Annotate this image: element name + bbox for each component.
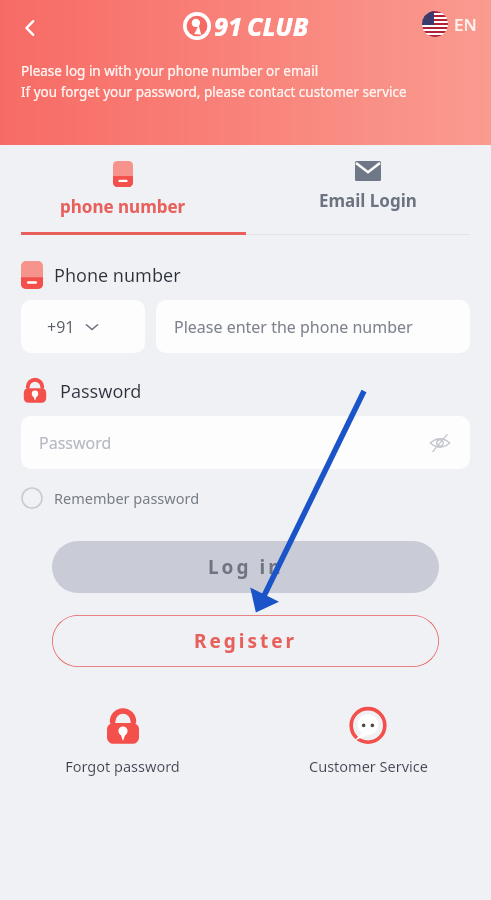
staticText: 91 (214, 9, 243, 43)
button[interactable]: Customer Service (245, 707, 491, 776)
staticText: Forgot password (65, 756, 180, 776)
staticText: Please enter the phone number (174, 316, 413, 338)
button[interactable]: Password (21, 416, 470, 469)
staticText: phone number (60, 195, 186, 218)
staticText: Customer Service (309, 756, 428, 776)
button[interactable]: Please enter the phone number (156, 300, 470, 353)
staticText: +91 (47, 316, 75, 338)
staticText: Email Login (319, 189, 417, 212)
staticText: Password (39, 432, 112, 454)
button[interactable]: Forgot password (0, 707, 245, 776)
staticText: Remember password (54, 488, 200, 508)
button[interactable]: Show password (424, 427, 456, 459)
staticText: If you forget your password, please cont… (21, 83, 407, 101)
staticText: Phone number (54, 263, 181, 288)
staticText: CLUB (247, 9, 309, 43)
button[interactable]: Register (52, 615, 439, 667)
button[interactable]: Log in (52, 541, 439, 593)
button[interactable]: EN (422, 11, 477, 37)
staticText: EN (454, 13, 477, 36)
button[interactable]: +91 (21, 300, 145, 353)
button[interactable]: phone number (0, 153, 245, 232)
button[interactable]: Remember password (21, 481, 200, 515)
staticText: Please log in with your phone number or … (21, 62, 319, 80)
staticText: Log in (208, 554, 284, 580)
button[interactable]: Back (10, 8, 50, 48)
button[interactable]: Email Login (245, 153, 491, 226)
staticText: Register (194, 628, 298, 654)
staticText: Password (60, 379, 142, 404)
